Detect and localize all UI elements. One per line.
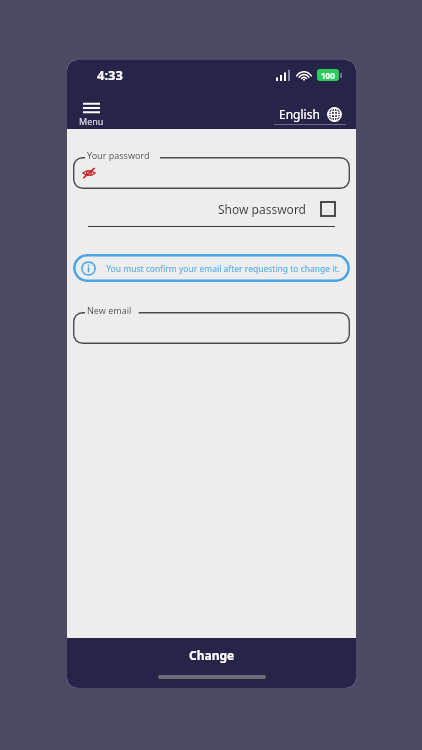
button[interactable]: Show password [73, 201, 335, 217]
staticText: Change [189, 647, 235, 663]
staticText: English [279, 106, 320, 122]
button[interactable]: English [274, 106, 346, 125]
staticText: Menu [79, 115, 104, 127]
staticText: You must confirm your email after reques… [106, 263, 340, 275]
staticText: Show password [218, 201, 306, 217]
staticText: Your password [87, 149, 150, 161]
button[interactable]: Menu [75, 100, 108, 129]
button[interactable]: You must confirm your email after reques… [73, 254, 350, 282]
staticText: New email [87, 304, 132, 316]
staticText: 4:33 [97, 66, 123, 84]
button[interactable]: Change [67, 638, 356, 671]
staticText: 100 [321, 70, 335, 81]
